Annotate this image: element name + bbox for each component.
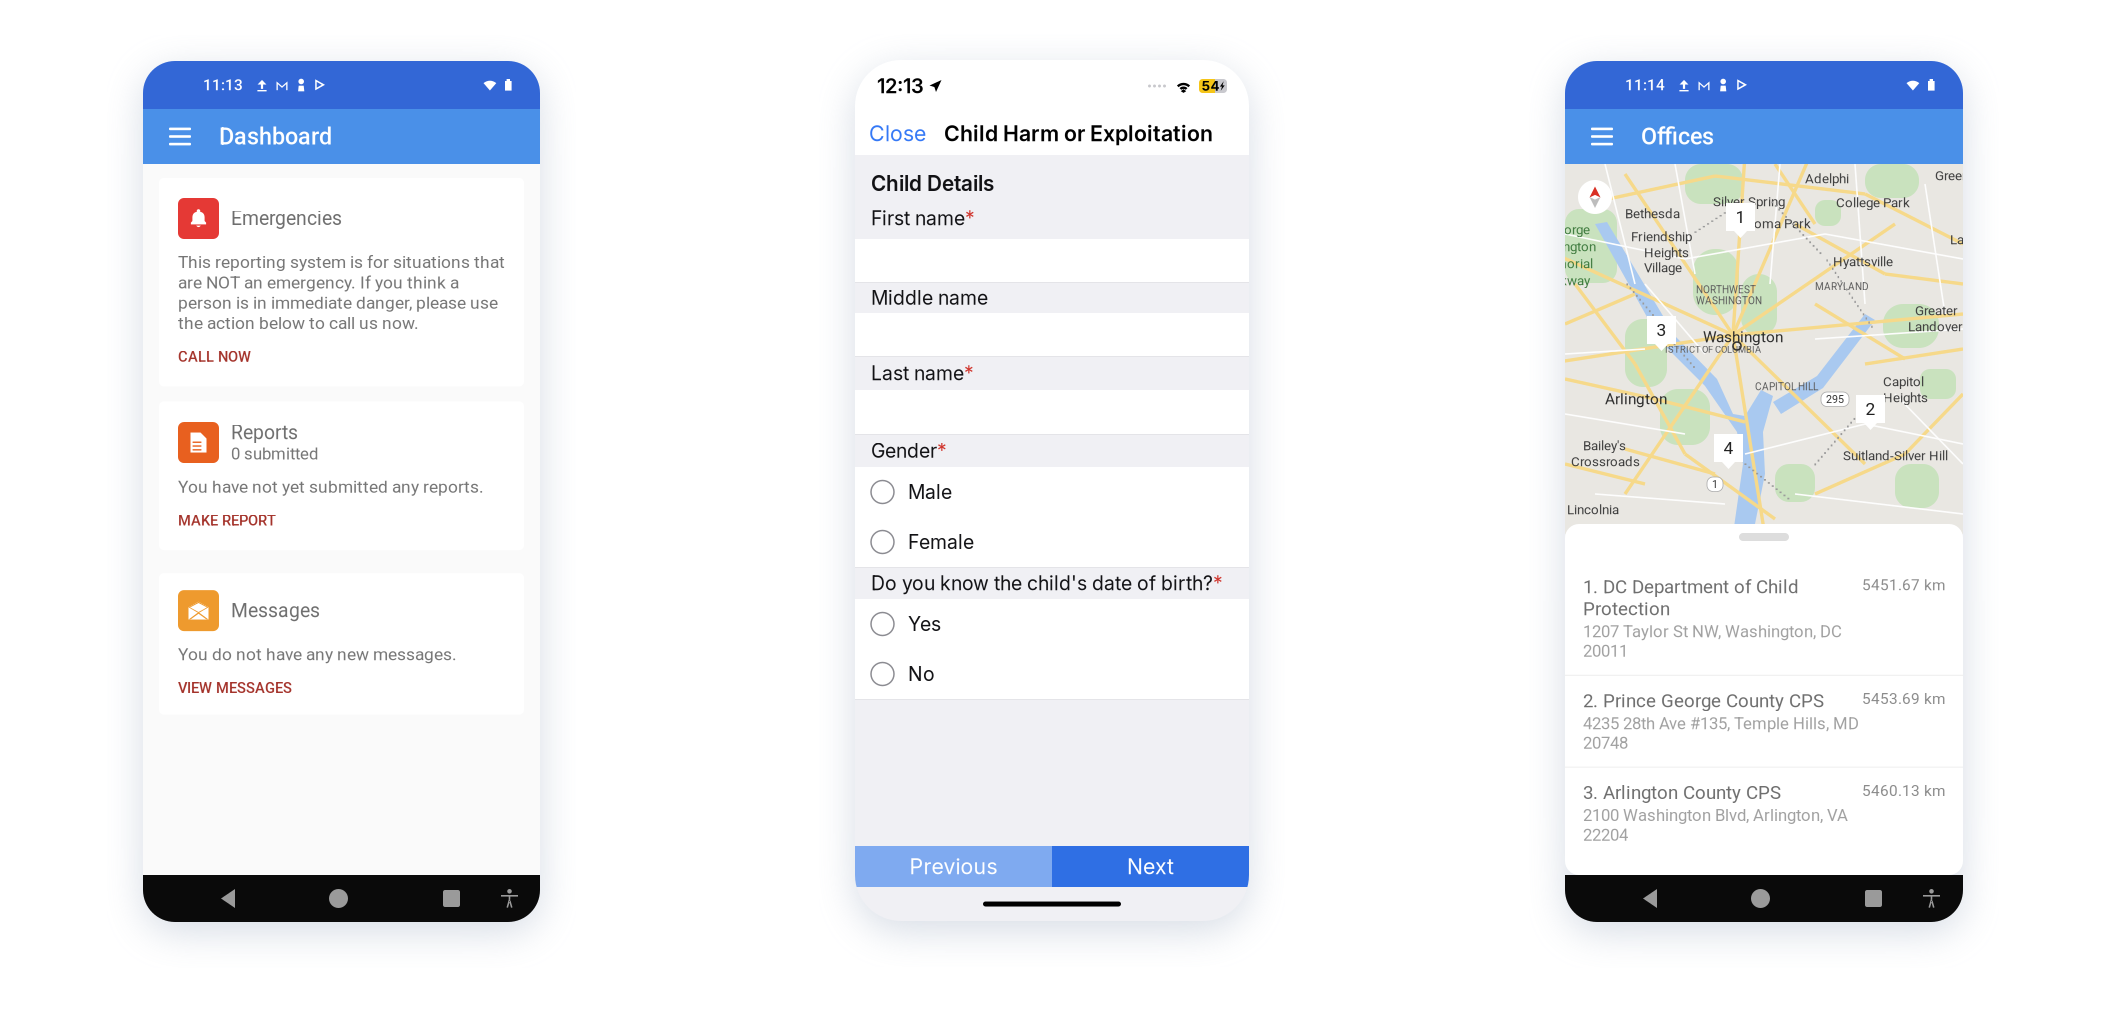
staticText: You do not have any new messages. [178, 644, 457, 664]
staticText: Greater [1915, 303, 1958, 319]
staticText: 3 [1656, 320, 1666, 340]
staticText: Middle name [871, 286, 988, 309]
staticText: eorge [1557, 222, 1590, 238]
staticText: Child Harm or Exploitation [944, 121, 1213, 146]
staticText: MAKE REPORT [178, 512, 276, 529]
staticText: CAPITOL HILL [1755, 381, 1818, 393]
staticText: * [964, 362, 974, 385]
staticText: Lincolnia [1567, 502, 1619, 518]
button[interactable]: Accessibility [491, 879, 528, 918]
button[interactable]: CALL NOW [178, 333, 251, 366]
staticText: No [908, 662, 935, 686]
staticText: Adelphi [1805, 171, 1849, 187]
staticText: * [965, 207, 975, 230]
button[interactable]: Menu [163, 118, 197, 155]
staticText: 11:14 [1625, 76, 1665, 94]
staticText: Yes [908, 612, 941, 636]
staticText: 4 [1723, 438, 1733, 458]
staticText: Bailey's [1583, 438, 1626, 454]
staticText: WASHINGTON [1696, 295, 1762, 307]
button[interactable]: Back [211, 879, 245, 918]
button[interactable]: 3. Arlington County CPS [1565, 768, 1963, 859]
staticText: 12:13 [877, 74, 924, 98]
staticText: 4235 28th Ave #135, Temple Hills, MD 207… [1583, 714, 1859, 753]
button[interactable]: Male [855, 467, 1249, 517]
staticText: rkway [1555, 273, 1590, 289]
staticText: Last name [871, 362, 964, 385]
staticText: 1207 Taylor St NW, Washington, DC 20011 [1583, 622, 1842, 661]
staticText: Village [1644, 260, 1682, 276]
button[interactable]: Recents [433, 880, 470, 917]
staticText: Female [908, 530, 974, 554]
staticText: La [1950, 232, 1964, 248]
staticText: 1 [1712, 478, 1718, 490]
staticText: You have not yet submitted any reports. [178, 477, 484, 497]
staticText: MARYLAND [1815, 281, 1869, 293]
staticText: Gender [871, 439, 937, 462]
button[interactable]: VIEW MESSAGES [178, 664, 292, 698]
staticText: Next [1127, 854, 1174, 879]
staticText: Male [908, 480, 952, 504]
staticText: Hyattsville [1833, 254, 1893, 270]
staticText: Arlington [1605, 390, 1667, 408]
staticText: 5460.13 km [1862, 782, 1945, 800]
button[interactable]: Home [1741, 879, 1780, 918]
staticText: 5451.67 km [1862, 576, 1945, 594]
staticText: Washington [1703, 328, 1783, 346]
button[interactable]: MAKE REPORT [178, 497, 276, 530]
staticText: 5453.69 km [1862, 690, 1945, 708]
button[interactable]: Next [1052, 846, 1249, 887]
staticText: Offices [1641, 123, 1714, 150]
staticText: Emergencies [231, 207, 342, 230]
button[interactable]: Back [1633, 879, 1667, 918]
staticText: * [937, 439, 947, 462]
button[interactable]: 1. DC Department of Child Protection [1565, 562, 1963, 676]
staticText: Green [1935, 168, 1969, 184]
staticText: ISTRICT OF COLUMBIA [1665, 344, 1761, 355]
staticText: 3. Arlington County CPS [1583, 782, 1781, 804]
staticText: 54 [1201, 78, 1219, 94]
button[interactable]: Yes [855, 599, 1249, 649]
button[interactable]: Previous [855, 846, 1052, 887]
staticText: Reports [231, 421, 298, 444]
staticText: morial [1555, 256, 1593, 272]
staticText: 2100 Washington Blvd, Arlington, VA 2220… [1583, 806, 1848, 845]
staticText: Bethesda [1625, 206, 1680, 222]
staticText: Capitol [1883, 374, 1924, 390]
staticText: 0 submitted [231, 444, 318, 464]
staticText: 1. DC Department of Child Protection [1583, 576, 1799, 620]
staticText: Child Details [871, 171, 994, 196]
button[interactable]: Recents [1855, 880, 1892, 917]
staticText: College Park [1836, 195, 1910, 211]
staticText: First name [871, 207, 965, 230]
button[interactable]: Accessibility [1913, 879, 1950, 918]
staticText: Dashboard [219, 123, 332, 150]
staticText: hington [1553, 239, 1596, 255]
staticText: Heights [1644, 245, 1689, 261]
staticText: Suitland-Silver Hill [1843, 448, 1948, 464]
staticText: 11:13 [203, 76, 243, 94]
button[interactable]: Close [869, 121, 926, 146]
staticText: CALL NOW [178, 348, 251, 365]
button[interactable]: No [855, 649, 1249, 699]
staticText: NORTHWEST [1696, 284, 1756, 296]
staticText: 295 [1826, 393, 1844, 405]
staticText: 2. Prince George County CPS [1583, 690, 1824, 712]
staticText: Landover [1908, 319, 1963, 335]
button[interactable]: 2. Prince George County CPS [1565, 676, 1963, 768]
staticText: 2 [1865, 399, 1875, 419]
staticText: Crossroads [1571, 454, 1640, 470]
staticText: Close [869, 121, 926, 146]
staticText: Silver Spring [1713, 194, 1785, 210]
button[interactable]: Home [319, 879, 358, 918]
staticText: Heights [1883, 390, 1928, 406]
button[interactable]: Female [855, 517, 1249, 567]
staticText: 1 [1735, 207, 1745, 227]
staticText: * [1213, 572, 1223, 595]
button[interactable]: Menu [1585, 118, 1619, 155]
staticText: Previous [909, 854, 997, 879]
staticText: Friendship [1631, 229, 1692, 245]
staticText: Do you know the child's date of birth? [871, 572, 1213, 595]
staticText: oma Park [1754, 216, 1811, 232]
staticText: Messages [231, 599, 320, 622]
